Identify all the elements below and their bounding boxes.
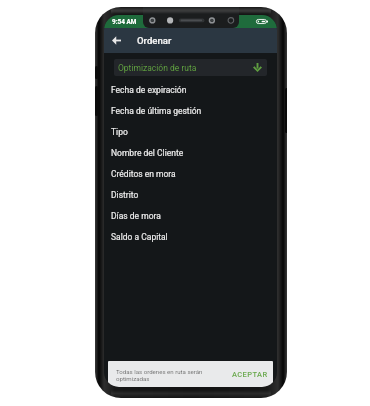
button[interactable]: Créditos en mora bbox=[104, 163, 277, 184]
button[interactable]: Saldo a Capital bbox=[104, 226, 277, 247]
button[interactable]: ACEPTAR bbox=[230, 367, 268, 382]
button[interactable]: Distrito bbox=[104, 184, 277, 205]
staticText: Distrito bbox=[111, 190, 139, 200]
button[interactable]: Días de mora bbox=[104, 205, 277, 226]
button[interactable]: Fecha de expiración bbox=[104, 79, 277, 100]
staticText: Saldo a Capital bbox=[111, 232, 168, 242]
button[interactable]: Fecha de última gestión bbox=[104, 100, 277, 121]
staticText: Tipo bbox=[111, 127, 128, 137]
button[interactable]: Nombre del Cliente bbox=[104, 142, 277, 163]
button[interactable]: Optimización de ruta bbox=[104, 56, 277, 79]
staticText: Ordenar bbox=[137, 35, 172, 46]
staticText: Nombre del Cliente bbox=[111, 148, 184, 158]
staticText: ACEPTAR bbox=[232, 370, 268, 379]
button[interactable]: Tipo bbox=[104, 121, 277, 142]
staticText: 9:54 AM bbox=[112, 18, 137, 26]
staticText: Fecha de expiración bbox=[111, 85, 187, 95]
staticText: Fecha de última gestión bbox=[111, 106, 202, 116]
staticText: Optimización de ruta bbox=[118, 63, 197, 73]
staticText: Créditos en mora bbox=[111, 169, 176, 179]
button[interactable]: Back bbox=[108, 32, 125, 49]
staticText: Días de mora bbox=[111, 211, 161, 221]
staticText: Todas las ordenes en ruta serán optimiza… bbox=[116, 368, 230, 383]
